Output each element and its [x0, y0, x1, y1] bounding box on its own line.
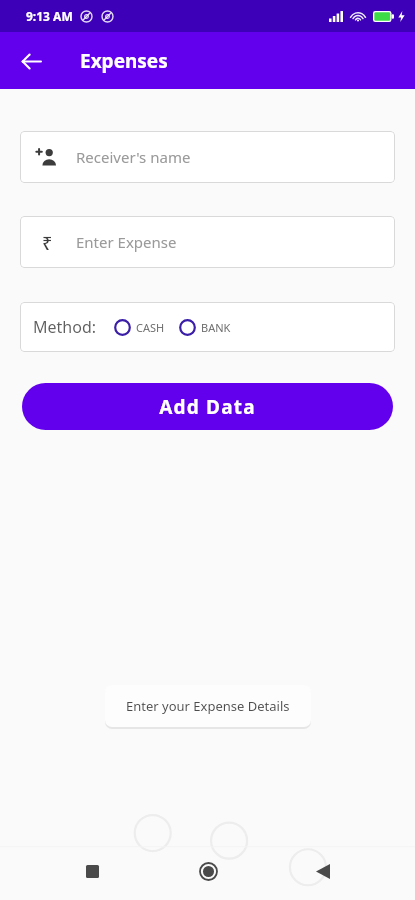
button[interactable]: CASH — [112, 315, 167, 340]
button[interactable]: Add Data — [22, 383, 393, 430]
staticText: Method: — [33, 316, 97, 338]
button[interactable]: Home — [185, 848, 231, 894]
button[interactable]: ₹ — [20, 216, 395, 268]
staticText: BANK — [201, 320, 231, 335]
staticText: ₹ — [42, 231, 53, 253]
staticText: Add Data — [159, 394, 256, 420]
staticText: CASH — [136, 320, 165, 335]
staticText: Expenses — [80, 48, 168, 74]
staticText: Enter Expense — [76, 232, 177, 252]
staticText: Receiver's name — [76, 147, 191, 167]
button[interactable]: BANK — [177, 315, 233, 340]
staticText: 9:13 AM — [26, 8, 73, 24]
button[interactable]: Back — [300, 848, 346, 894]
button[interactable]: Back — [10, 40, 52, 82]
staticText: Enter your Expense Details — [126, 697, 290, 715]
staticText: Enter your Expense Details — [126, 699, 290, 717]
button[interactable]: Receiver's name — [20, 131, 395, 183]
button[interactable]: Recent apps — [69, 848, 115, 894]
